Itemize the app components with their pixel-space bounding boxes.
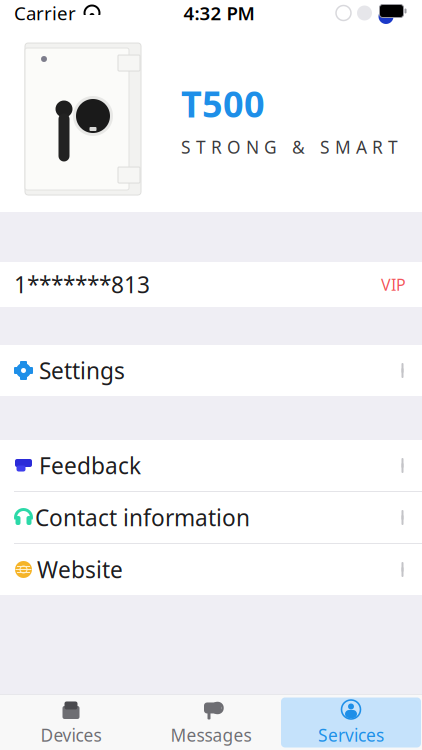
staticText: Feedback	[39, 450, 141, 480]
button[interactable]: Services	[281, 697, 421, 747]
staticText: Settings	[39, 355, 125, 385]
button[interactable]: 1*******813	[0, 262, 422, 307]
staticText: VIP	[381, 274, 406, 295]
button[interactable]: Contact information	[0, 492, 422, 543]
staticText: Website	[37, 554, 123, 584]
button[interactable]: Settings	[0, 345, 422, 396]
staticText: Devices	[40, 723, 101, 746]
button[interactable]: Feedback	[0, 440, 422, 491]
button[interactable]: Messages	[141, 697, 281, 747]
staticText: Carrier	[14, 1, 76, 25]
staticText: Contact information	[35, 502, 250, 532]
staticText: S T R O N G & S M A R T	[181, 135, 398, 158]
button[interactable]: Devices	[1, 697, 141, 747]
staticText: Services	[318, 723, 384, 746]
staticText: 1*******813	[14, 269, 150, 299]
staticText: Messages	[170, 723, 251, 746]
staticText: T500	[181, 80, 265, 127]
button[interactable]: Website	[0, 544, 422, 595]
staticText: 4:32 PM	[183, 1, 254, 25]
